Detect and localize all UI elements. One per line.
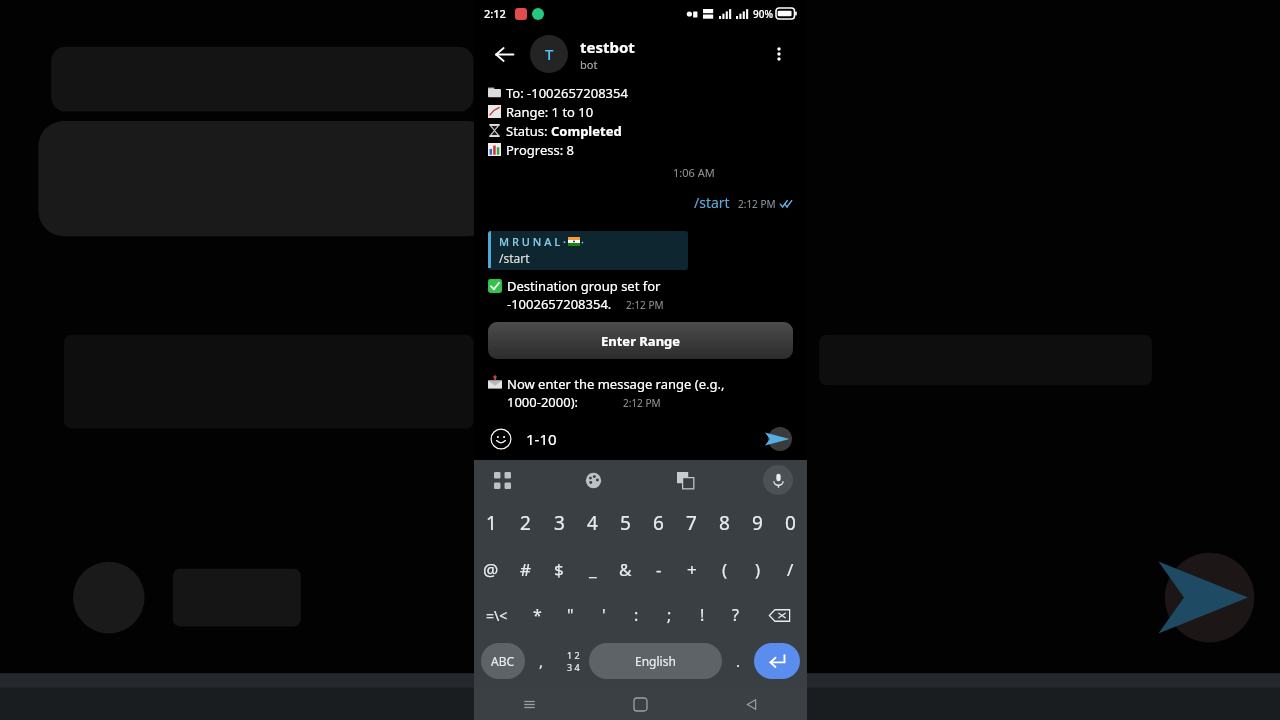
staticText: @ <box>483 558 499 581</box>
staticText: 1-10 <box>526 429 761 449</box>
button[interactable]: More options <box>764 39 794 69</box>
staticText: ABC <box>491 653 515 669</box>
staticText: , <box>539 651 544 671</box>
staticText: 5 <box>620 510 631 536</box>
button[interactable]: 6 <box>642 500 675 546</box>
staticText: & <box>619 558 632 581</box>
staticText: Progress: 8 <box>506 141 575 159</box>
button[interactable]: 1 <box>474 500 508 546</box>
staticText: 1 2 <box>567 649 580 661</box>
staticText: 3 <box>554 510 565 536</box>
button[interactable]: M R U N A L · <box>488 231 688 270</box>
button[interactable]: . <box>722 643 754 679</box>
staticText: # <box>520 558 531 581</box>
button[interactable]: 5 <box>609 500 642 546</box>
staticText: 2:12 PM <box>623 396 661 410</box>
button[interactable]: $ <box>542 546 576 592</box>
button[interactable]: 1 2 <box>557 643 589 679</box>
staticText: 0 <box>785 510 796 536</box>
button[interactable]: 9 <box>741 500 774 546</box>
staticText: ? <box>732 604 739 626</box>
button[interactable]: Enter <box>754 643 800 679</box>
button[interactable]: 7 <box>675 500 708 546</box>
button[interactable]: 2 <box>508 500 542 546</box>
staticText: 2:12 <box>484 6 506 21</box>
staticText: /start <box>694 193 730 212</box>
staticText: ( <box>722 558 728 581</box>
button[interactable]: Profile photo <box>530 35 568 73</box>
staticText: -1002657208354. <box>507 295 612 313</box>
staticText: Completed <box>551 122 622 140</box>
staticText: 2:12 PM <box>626 298 664 312</box>
button[interactable]: English <box>589 643 722 679</box>
staticText: * <box>533 604 542 626</box>
staticText: To: -1002657208354 <box>506 84 628 102</box>
button[interactable]: 3 <box>542 500 576 546</box>
button[interactable]: ! <box>686 592 719 638</box>
staticText: 9 <box>752 510 763 536</box>
button[interactable]: Send <box>761 423 793 455</box>
button[interactable]: ; <box>653 592 686 638</box>
button[interactable]: Emoji <box>488 426 514 452</box>
button[interactable]: Translate <box>671 466 699 494</box>
button[interactable]: Enter Range <box>488 322 793 359</box>
button[interactable]: Back <box>696 688 807 720</box>
button[interactable]: =\< <box>474 592 520 638</box>
button[interactable]: Clipboard <box>488 466 516 494</box>
button[interactable]: testbot <box>580 37 764 72</box>
staticText: - <box>656 558 662 581</box>
button[interactable]: 4 <box>576 500 609 546</box>
button[interactable]: + <box>675 546 708 592</box>
staticText: 1000-2000): <box>507 393 579 411</box>
button[interactable]: ABC <box>481 643 525 679</box>
button[interactable]: Recents <box>474 688 585 720</box>
button[interactable]: ) <box>741 546 774 592</box>
button[interactable]: ( <box>708 546 741 592</box>
staticText: T <box>545 44 554 64</box>
button[interactable]: 0 <box>774 500 807 546</box>
button[interactable]: Home <box>585 688 696 720</box>
button[interactable]: ? <box>719 592 752 638</box>
staticText: English <box>635 653 676 669</box>
button[interactable]: @ <box>474 546 508 592</box>
staticText: 2:12 PM <box>738 197 776 211</box>
staticText: =\< <box>486 606 508 625</box>
button[interactable]: Voice input <box>763 465 793 495</box>
button[interactable]: / <box>774 546 807 592</box>
button[interactable]: _ <box>576 546 609 592</box>
staticText: : <box>634 604 639 626</box>
staticText: / <box>787 558 794 581</box>
staticText: $ <box>554 558 564 581</box>
staticText: Destination group set for <box>507 277 661 295</box>
staticText: Enter Range <box>601 332 681 350</box>
staticText: + <box>687 558 697 581</box>
button[interactable]: : <box>620 592 653 638</box>
button[interactable]: ' <box>587 592 620 638</box>
staticText: M R U N A L · <box>499 234 566 249</box>
button[interactable]: , <box>525 643 557 679</box>
staticText: 90% <box>753 7 773 21</box>
button[interactable]: Backspace <box>752 592 807 638</box>
button[interactable]: " <box>554 592 587 638</box>
button[interactable]: * <box>520 592 554 638</box>
staticText: ! <box>700 604 705 626</box>
staticText: 3 4 <box>567 661 580 673</box>
staticText: " <box>567 604 574 626</box>
staticText: . <box>736 651 741 671</box>
staticText: 2 <box>520 510 531 536</box>
staticText: ' <box>602 604 606 626</box>
staticText: 4 <box>587 510 598 536</box>
button[interactable]: Theme <box>579 466 607 494</box>
button[interactable]: - <box>642 546 675 592</box>
staticText: 1:06 AM <box>673 165 715 180</box>
staticText: 7 <box>686 510 697 536</box>
button[interactable]: 8 <box>708 500 741 546</box>
button[interactable]: Back <box>489 39 519 69</box>
staticText: 6 <box>653 510 664 536</box>
button[interactable]: # <box>508 546 542 592</box>
staticText: ) <box>755 558 761 581</box>
staticText: · <box>581 234 584 249</box>
staticText: Status: <box>506 122 551 140</box>
staticText: testbot <box>580 37 635 57</box>
button[interactable]: & <box>609 546 642 592</box>
